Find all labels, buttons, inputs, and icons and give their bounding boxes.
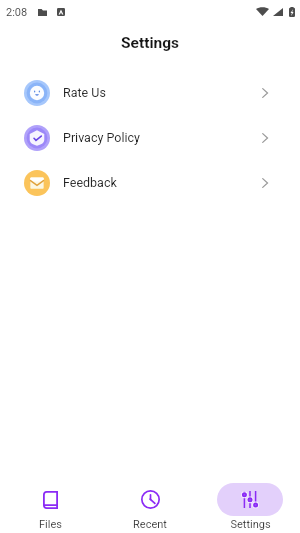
staticText: Rate Us [63,85,106,100]
staticText: Settings [230,518,271,531]
staticText: Recent [133,518,167,531]
button[interactable]: Recent [100,473,200,533]
staticText: Files [39,518,62,531]
staticText: Feedback [63,175,117,190]
staticText: 2:08 [6,6,28,19]
button[interactable]: Files [0,473,100,533]
button[interactable]: Feedback [0,160,300,205]
button[interactable]: Privacy Policy [0,115,300,160]
button[interactable]: Rate Us [0,70,300,115]
staticText: Privacy Policy [63,130,140,145]
button[interactable]: Settings [200,473,300,533]
staticText: Settings [121,34,180,52]
